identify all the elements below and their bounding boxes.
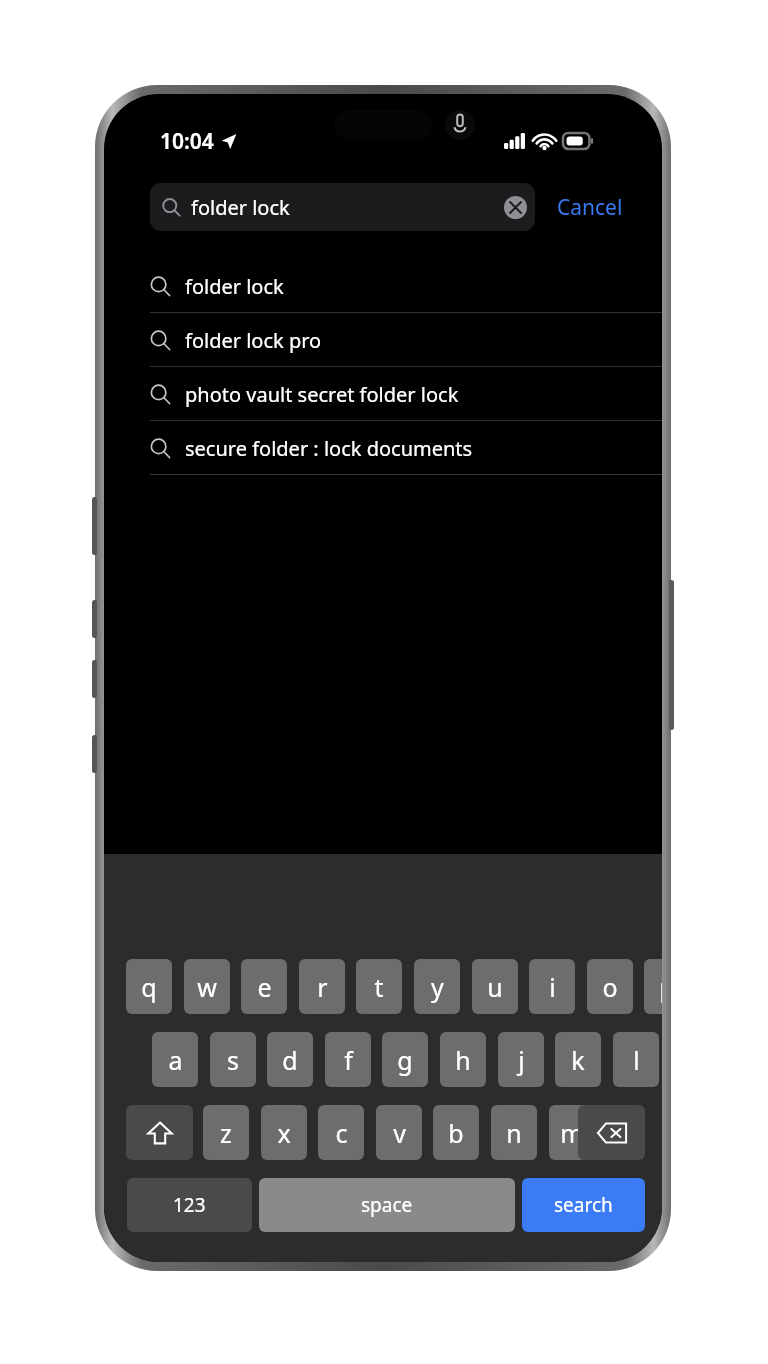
- button[interactable]: v: [376, 1105, 422, 1160]
- staticText: x: [277, 1116, 291, 1150]
- staticText: photo vault secret folder lock: [185, 381, 459, 408]
- button[interactable]: o: [587, 959, 633, 1014]
- button[interactable]: e: [241, 959, 287, 1014]
- button[interactable]: Clear text: [504, 196, 527, 219]
- staticText: m: [560, 1116, 584, 1150]
- button[interactable]: space: [259, 1178, 515, 1232]
- button[interactable]: search: [522, 1178, 645, 1232]
- button[interactable]: n: [491, 1105, 537, 1160]
- staticText: s: [227, 1043, 239, 1077]
- staticText: w: [197, 970, 217, 1004]
- staticText: p: [659, 970, 662, 1004]
- staticText: g: [397, 1043, 413, 1077]
- staticText: folder lock: [191, 194, 290, 221]
- button[interactable]: m: [549, 1105, 595, 1160]
- staticText: v: [393, 1116, 406, 1150]
- staticText: space: [361, 1192, 413, 1218]
- staticText: j: [518, 1043, 525, 1077]
- staticText: h: [455, 1043, 471, 1077]
- button[interactable]: t: [356, 959, 402, 1014]
- button[interactable]: x: [261, 1105, 307, 1160]
- staticText: r: [317, 970, 328, 1004]
- button[interactable]: c: [318, 1105, 364, 1160]
- button[interactable]: Backspace: [578, 1105, 645, 1160]
- button[interactable]: Cancel: [548, 184, 632, 230]
- button[interactable]: photo vault secret folder lock: [104, 367, 662, 421]
- staticText: folder lock: [185, 273, 284, 300]
- button[interactable]: Shift: [126, 1105, 193, 1160]
- staticText: o: [602, 970, 618, 1004]
- button[interactable]: a: [152, 1032, 198, 1087]
- staticText: k: [571, 1043, 585, 1077]
- staticText: y: [431, 970, 444, 1004]
- button[interactable]: folder lock: [150, 183, 535, 231]
- staticText: b: [448, 1116, 464, 1150]
- staticText: c: [335, 1116, 348, 1150]
- staticText: u: [487, 970, 503, 1004]
- button[interactable]: f: [325, 1032, 371, 1087]
- button[interactable]: w: [184, 959, 230, 1014]
- button[interactable]: q: [126, 959, 172, 1014]
- button[interactable]: i: [529, 959, 575, 1014]
- staticText: folder lock pro: [185, 327, 322, 354]
- button[interactable]: g: [382, 1032, 428, 1087]
- button[interactable]: d: [267, 1032, 313, 1087]
- button[interactable]: j: [498, 1032, 544, 1087]
- staticText: 10:04: [160, 127, 214, 156]
- button[interactable]: folder lock: [104, 259, 662, 313]
- staticText: f: [344, 1043, 353, 1077]
- staticText: z: [220, 1116, 232, 1150]
- button[interactable]: r: [299, 959, 345, 1014]
- staticText: e: [257, 970, 272, 1004]
- staticText: i: [549, 970, 556, 1004]
- staticText: Cancel: [557, 193, 623, 222]
- button[interactable]: s: [210, 1032, 256, 1087]
- button[interactable]: k: [555, 1032, 601, 1087]
- staticText: d: [282, 1043, 298, 1077]
- button[interactable]: 123: [127, 1178, 252, 1232]
- button[interactable]: y: [414, 959, 460, 1014]
- staticText: 123: [173, 1192, 206, 1218]
- button[interactable]: u: [472, 959, 518, 1014]
- button[interactable]: p: [644, 959, 662, 1014]
- staticText: secure folder : lock documents: [185, 435, 473, 462]
- button[interactable]: folder lock pro: [104, 313, 662, 367]
- button[interactable]: secure folder : lock documents: [104, 421, 662, 475]
- staticText: t: [374, 970, 384, 1004]
- staticText: n: [506, 1116, 522, 1150]
- staticText: a: [168, 1043, 183, 1077]
- staticText: q: [141, 970, 157, 1004]
- button[interactable]: l: [613, 1032, 659, 1087]
- staticText: l: [633, 1043, 640, 1077]
- button[interactable]: b: [433, 1105, 479, 1160]
- button[interactable]: h: [440, 1032, 486, 1087]
- button[interactable]: z: [203, 1105, 249, 1160]
- staticText: search: [554, 1192, 613, 1218]
